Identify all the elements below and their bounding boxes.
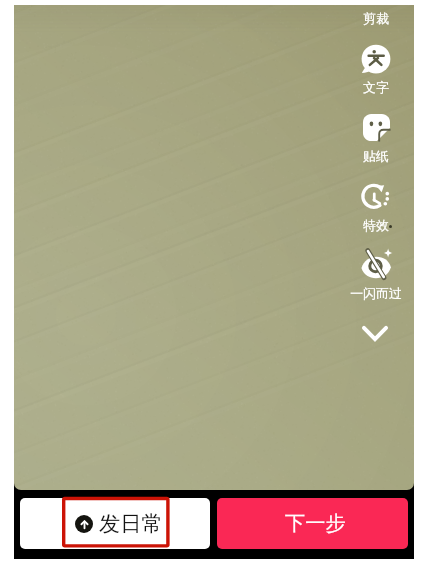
staticText: 下一步 <box>285 511 346 536</box>
button[interactable]: 一闪而过 <box>343 246 409 305</box>
button[interactable]: 发日常 <box>20 498 210 549</box>
staticText: 发日常 <box>99 510 163 537</box>
button[interactable]: Collapse tools <box>354 315 396 351</box>
button[interactable]: 剪裁 <box>359 10 393 28</box>
staticText: 剪裁 <box>363 11 389 27</box>
button[interactable]: 贴纸 <box>355 111 397 168</box>
staticText: 一闪而过 <box>350 286 402 302</box>
staticText: 特效 <box>363 218 389 234</box>
button[interactable]: 文字 <box>355 40 397 99</box>
staticText: 贴纸 <box>363 149 389 165</box>
button[interactable]: 特效 <box>355 179 397 237</box>
button[interactable]: 下一步 <box>217 498 408 549</box>
staticText: 文字 <box>363 80 389 96</box>
